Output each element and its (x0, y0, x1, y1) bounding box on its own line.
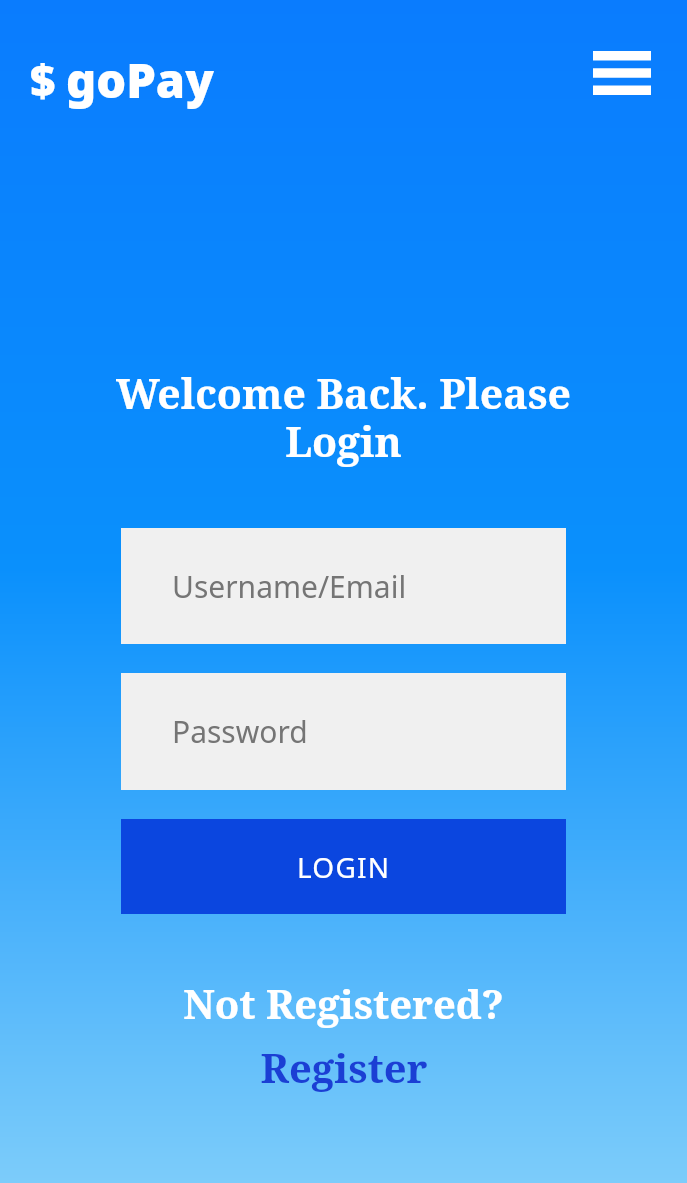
button[interactable]: $ (28, 44, 216, 116)
staticText: Password (172, 711, 308, 752)
staticText: Register (260, 1040, 428, 1094)
button[interactable]: Password (121, 673, 566, 790)
staticText: Not Registered? (183, 976, 504, 1030)
button[interactable]: LOGIN (121, 819, 566, 914)
staticText: LOGIN (297, 848, 391, 886)
staticText: Welcome Back. Please Login (100, 365, 587, 469)
staticText: Username/Email (172, 566, 407, 607)
button[interactable]: Register (254, 1038, 434, 1096)
button[interactable]: Open menu (586, 43, 658, 103)
staticText: goPay (66, 48, 214, 112)
button[interactable]: Username/Email (121, 528, 566, 644)
staticText: $ (30, 50, 56, 110)
